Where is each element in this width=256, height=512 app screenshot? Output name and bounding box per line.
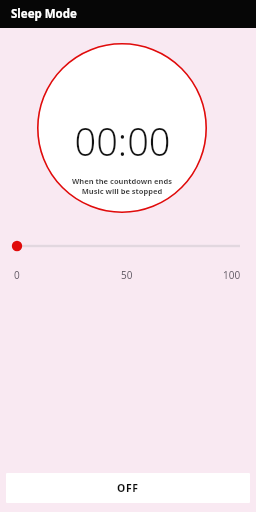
button[interactable]: Countdown timer [37,43,207,213]
staticText: 50 [121,268,133,282]
staticText: When the countdown ends Music will be st… [72,176,172,196]
staticText: 00:00 [74,115,171,167]
staticText: OFF [117,481,139,495]
staticText: Sleep Mode [11,6,77,22]
button[interactable]: OFF [6,473,250,503]
staticText: 0 [14,268,20,282]
staticText: 100 [223,268,241,282]
button[interactable]: Duration slider [0,236,256,256]
